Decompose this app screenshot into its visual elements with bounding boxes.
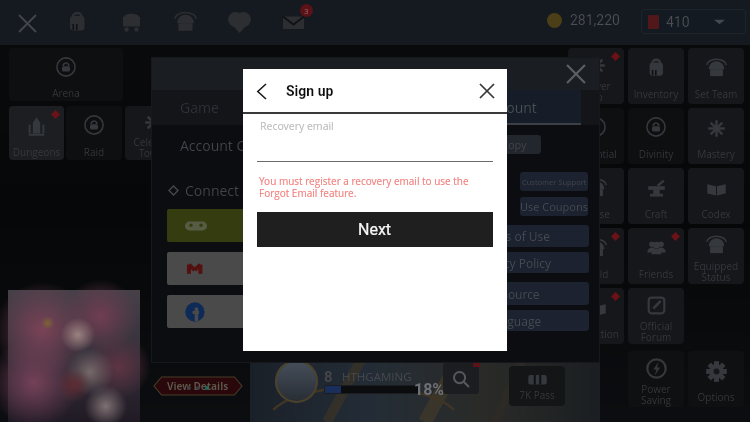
staticText: You must register a recovery email to us…	[259, 174, 469, 200]
button[interactable]: Codex	[688, 168, 744, 224]
staticText: Copy	[501, 137, 527, 152]
staticText: Guild	[568, 267, 624, 281]
button[interactable]: Divinity	[628, 108, 684, 164]
staticText: Set Team	[688, 87, 744, 101]
staticText: Raid	[66, 145, 122, 159]
button[interactable]: Sign in with Google	[167, 252, 499, 285]
button[interactable]: Shortcut 5	[277, 6, 309, 38]
staticText: 3	[304, 5, 309, 16]
button[interactable]: Options	[688, 351, 744, 407]
button[interactable]: Potential	[568, 108, 624, 164]
staticText: Equipped Status	[688, 259, 744, 284]
button[interactable]: Language	[439, 310, 589, 331]
staticText: 8	[324, 368, 333, 386]
staticText: HTHGAMING	[342, 369, 412, 385]
button[interactable]: Dungeons	[9, 106, 64, 160]
staticText: Customer Support	[522, 177, 587, 187]
staticText: 281,220	[570, 12, 620, 28]
button[interactable]: Power Saving	[628, 351, 684, 407]
button[interactable]: Privacy Policy	[439, 252, 589, 273]
button[interactable]: Celestial Tower	[125, 106, 181, 160]
button[interactable]: Craft	[628, 168, 684, 224]
staticText: Codex	[688, 207, 744, 221]
button[interactable]: Resource	[439, 282, 589, 305]
staticText: Options	[688, 390, 744, 404]
staticText: Power Up	[568, 79, 624, 104]
staticText: 18%	[414, 380, 445, 399]
staticText: Divinity	[628, 147, 684, 161]
button[interactable]: Close	[14, 10, 40, 36]
staticText: Dungeons	[9, 145, 64, 159]
button[interactable]: Official Forum	[628, 288, 684, 344]
button[interactable]: Horse	[568, 168, 624, 224]
staticText: Resource	[488, 286, 540, 302]
button[interactable]: Shortcut 1	[61, 6, 93, 38]
button[interactable]: Copy	[486, 135, 541, 154]
staticText: Google Play Games	[272, 217, 395, 235]
staticText: Game	[180, 98, 219, 117]
staticText: Inventory	[628, 87, 684, 101]
staticText: Official Forum	[628, 319, 684, 344]
button[interactable]: 7K Pass	[509, 366, 565, 406]
button[interactable]: Close settings	[563, 61, 589, 87]
button[interactable]: Collection	[568, 288, 624, 344]
button[interactable]: Inventory	[628, 48, 684, 104]
button[interactable]: Raid	[66, 106, 122, 160]
button[interactable]: Guild	[568, 228, 624, 284]
button[interactable]: Search	[443, 363, 479, 394]
staticText: Use Coupons	[520, 199, 588, 214]
staticText: Craft	[628, 207, 684, 221]
button[interactable]: Mastery	[688, 108, 744, 164]
staticText: Friends	[628, 267, 684, 281]
staticText: Power Saving	[628, 382, 684, 407]
button[interactable]: Back	[248, 78, 274, 104]
staticText: Account	[484, 98, 537, 117]
button[interactable]: Sign in with Facebook	[167, 295, 499, 328]
staticText: Connect Account	[185, 181, 296, 200]
button[interactable]: Game	[151, 90, 375, 125]
button[interactable]: Power Up	[568, 48, 624, 104]
button[interactable]: Close	[474, 78, 500, 104]
button[interactable]: Equipped Status	[688, 228, 744, 284]
button[interactable]: Shortcut 3	[169, 6, 201, 38]
button[interactable]: View Details	[154, 377, 242, 395]
button[interactable]: Shortcut 4	[223, 6, 255, 38]
button[interactable]: Terms of Use	[439, 225, 589, 247]
staticText: Potential	[568, 147, 624, 161]
staticText: Mastery	[688, 147, 744, 161]
staticText: Horse	[568, 207, 624, 221]
staticText: Recovery email	[260, 119, 334, 133]
button[interactable]: Set Team	[688, 48, 744, 104]
button[interactable]: Profile	[275, 360, 318, 403]
button[interactable]: Customer Support	[520, 172, 588, 191]
button[interactable]: Account	[375, 90, 581, 125]
staticText: Language	[487, 313, 542, 329]
button[interactable]: Arena	[9, 48, 123, 101]
staticText: Terms of Use	[477, 228, 551, 244]
button[interactable]: Use Coupons	[520, 197, 588, 216]
staticText: Sign up	[286, 83, 334, 99]
staticText: 7K Pass	[509, 388, 565, 402]
staticText: Arena	[9, 86, 123, 100]
staticText: Celestial Tower	[125, 135, 181, 160]
staticText: Next	[358, 220, 392, 239]
button[interactable]: Next	[257, 212, 493, 247]
button[interactable]: Google Play Games	[167, 209, 499, 242]
staticText: Privacy Policy	[476, 255, 552, 271]
staticText: 410	[666, 14, 690, 30]
staticText: View Details	[167, 379, 229, 393]
button[interactable]: 410	[641, 9, 746, 34]
button[interactable]: Friends	[628, 228, 684, 284]
staticText: Engine Version Ver. 1.20.00(3527707)	[296, 351, 489, 366]
button[interactable]: Shortcut 2	[115, 6, 147, 38]
staticText: Collection	[568, 327, 624, 341]
staticText: Account Code	[180, 136, 271, 155]
